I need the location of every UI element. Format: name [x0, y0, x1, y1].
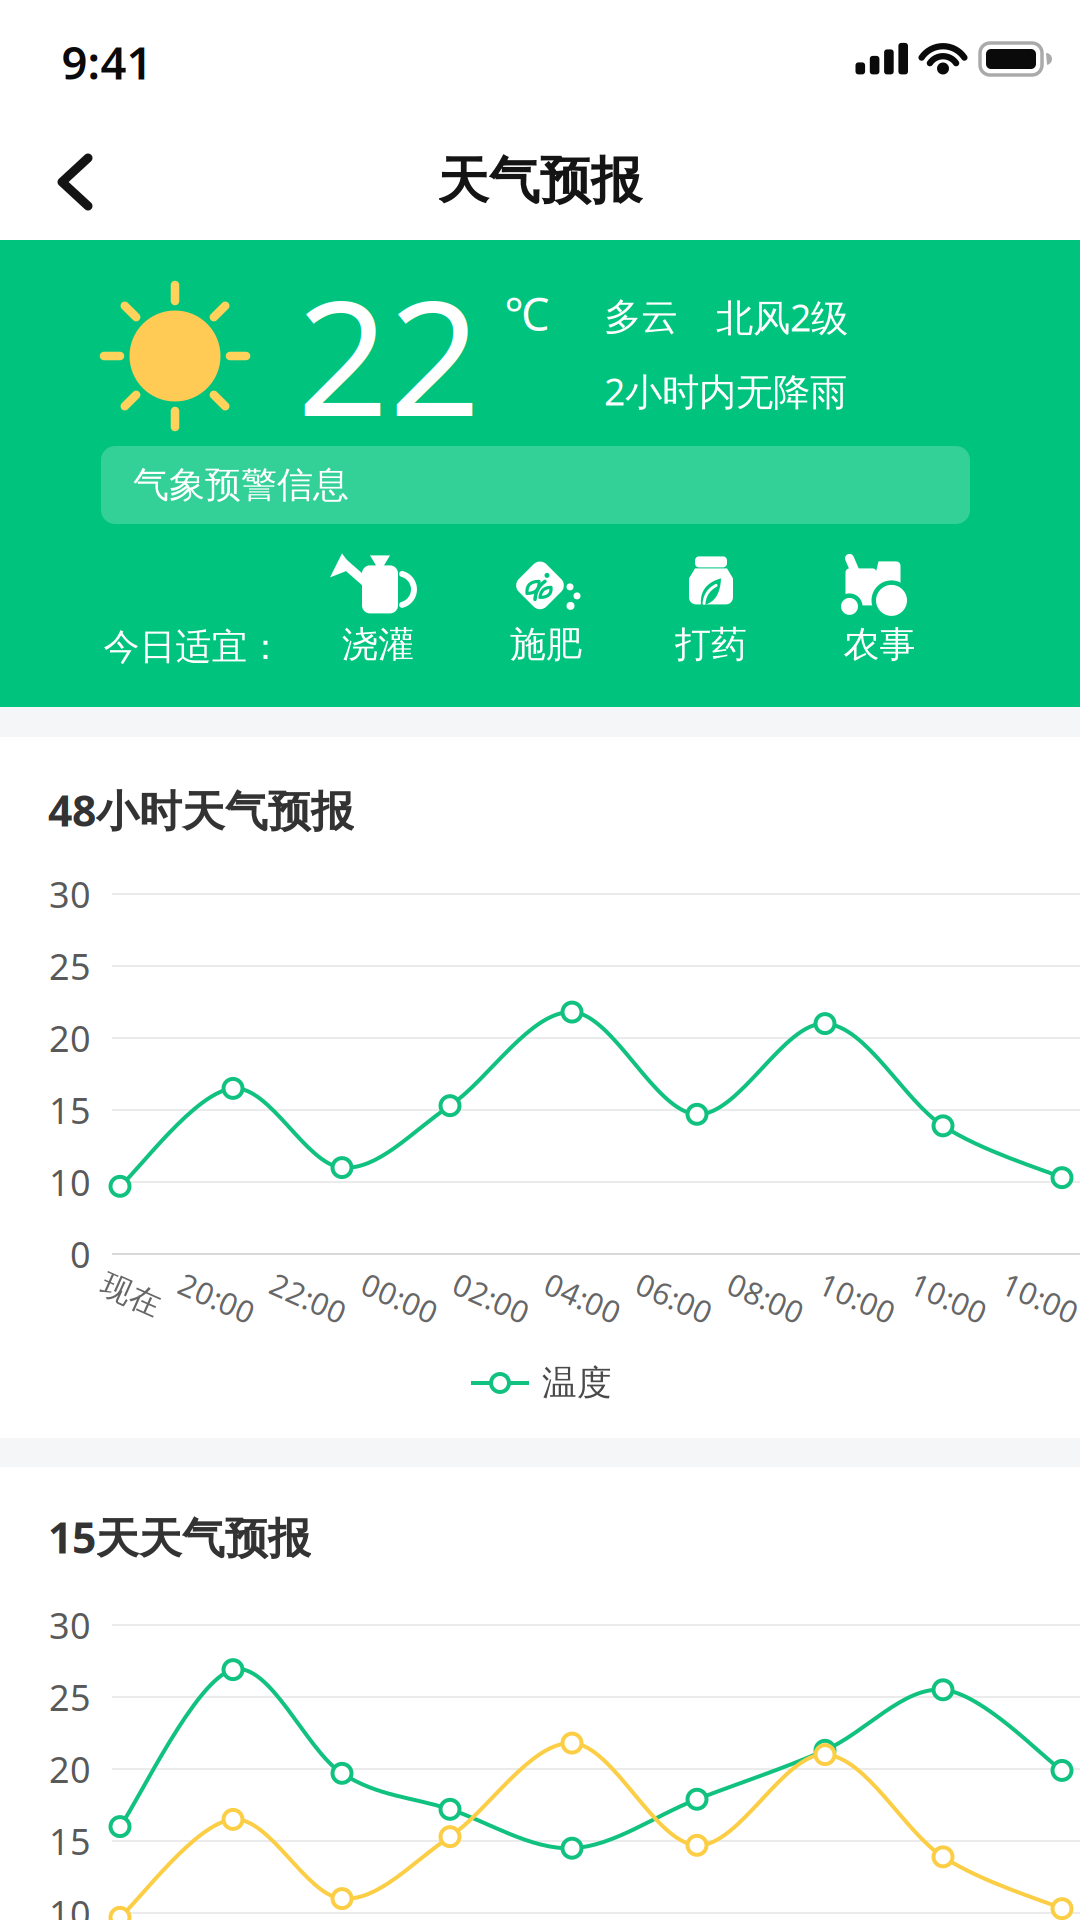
button[interactable]: 浇灌: [330, 553, 426, 667]
staticText: 30: [49, 870, 91, 918]
staticText: 气象预警信息: [133, 463, 349, 507]
staticText: 02:00: [451, 1278, 531, 1318]
staticText: 10:00: [909, 1278, 989, 1318]
staticText: 施肥: [510, 622, 582, 667]
staticText: 30: [49, 1601, 91, 1649]
staticText: 04:00: [543, 1278, 623, 1318]
staticText: 10: [49, 1889, 91, 1920]
staticText: 20: [49, 1745, 91, 1793]
staticText: 温度: [542, 1362, 612, 1404]
staticText: 多云: [604, 294, 678, 340]
staticText: 15: [49, 1817, 91, 1865]
staticText: 9:41: [61, 32, 152, 92]
staticText: 20:00: [177, 1278, 257, 1318]
staticText: 现在: [100, 1276, 162, 1314]
staticText: 15天天气预报: [48, 1509, 311, 1565]
staticText: 打药: [675, 622, 747, 667]
staticText: 22:00: [268, 1278, 348, 1318]
staticText: 今日适宜：: [103, 625, 283, 669]
staticText: 25: [49, 942, 91, 990]
staticText: 22: [297, 248, 481, 460]
staticText: 农事: [843, 622, 915, 667]
staticText: 06:00: [634, 1278, 714, 1318]
staticText: 0: [70, 1230, 91, 1278]
staticText: 08:00: [726, 1278, 806, 1318]
staticText: 25: [49, 1673, 91, 1721]
button[interactable]: 打药: [663, 553, 759, 667]
staticText: 10: [49, 1158, 91, 1206]
staticText: 48小时天气预报: [48, 782, 354, 838]
staticText: 20: [49, 1014, 91, 1062]
staticText: ℃: [504, 283, 549, 343]
staticText: 2小时内无降雨: [604, 366, 847, 416]
button[interactable]: 农事: [831, 553, 927, 667]
staticText: 天气预报: [438, 150, 642, 212]
staticText: 浇灌: [342, 622, 414, 667]
staticText: 00:00: [360, 1278, 440, 1318]
staticText: 10:00: [817, 1278, 897, 1318]
button[interactable]: Back: [54, 154, 102, 210]
button[interactable]: 施肥: [498, 553, 594, 667]
staticText: 15: [49, 1086, 91, 1134]
staticText: 10:00: [1000, 1278, 1080, 1318]
staticText: 北风2级: [716, 292, 848, 342]
button[interactable]: 气象预警信息: [101, 446, 970, 524]
